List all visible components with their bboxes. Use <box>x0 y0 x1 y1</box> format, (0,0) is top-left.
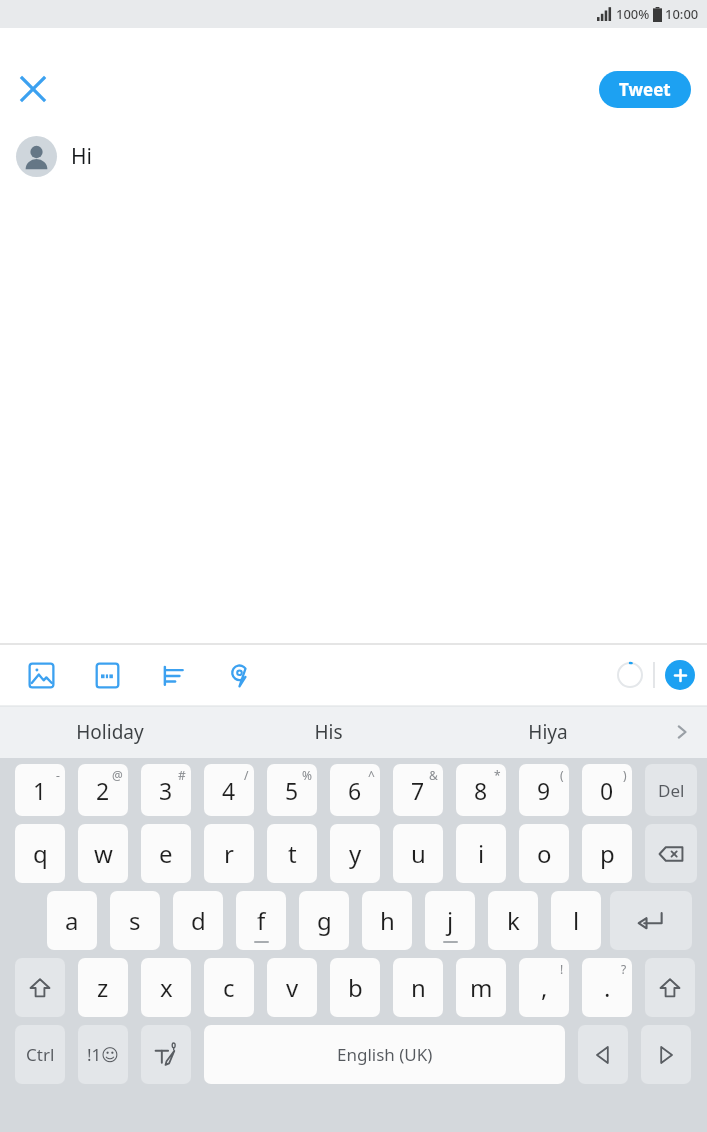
staticText: ) <box>623 767 627 783</box>
button[interactable]: i <box>456 824 506 883</box>
staticText: k <box>507 904 520 937</box>
button[interactable]: More suggestions <box>657 706 707 758</box>
staticText: r <box>224 837 234 870</box>
button[interactable]: b <box>330 958 380 1017</box>
button[interactable]: Holiday <box>0 706 219 758</box>
staticText: m <box>470 971 493 1004</box>
button[interactable]: e <box>141 824 191 883</box>
button[interactable]: Symbols and emoji <box>78 1025 128 1084</box>
button[interactable]: 1 <box>15 764 65 816</box>
staticText: v <box>286 971 299 1004</box>
staticText: t <box>288 837 297 870</box>
button[interactable]: 5 <box>267 764 317 816</box>
staticText: 7 <box>411 775 425 806</box>
button[interactable]: Move right <box>641 1025 691 1084</box>
button[interactable]: Add poll <box>140 651 206 699</box>
staticText: Hi <box>71 142 92 171</box>
button[interactable]: Add photo <box>8 651 74 699</box>
button[interactable]: Close <box>8 64 58 114</box>
button[interactable]: q <box>15 824 65 883</box>
staticText: 2 <box>96 775 110 806</box>
button[interactable]: a <box>47 891 97 950</box>
button[interactable]: 3 <box>141 764 191 816</box>
button[interactable]: His <box>219 706 438 758</box>
staticText: !1☺ <box>87 1043 120 1066</box>
button[interactable]: Backspace <box>645 824 697 883</box>
staticText: z <box>97 971 109 1004</box>
staticText: 6 <box>348 775 362 806</box>
staticText: f <box>257 904 266 937</box>
button[interactable]: l <box>551 891 601 950</box>
staticText: 3 <box>159 775 173 806</box>
button[interactable]: . <box>582 958 632 1017</box>
staticText: ( <box>560 767 564 783</box>
staticText: 8 <box>474 775 488 806</box>
button[interactable]: k <box>488 891 538 950</box>
button[interactable]: 0 <box>582 764 632 816</box>
button[interactable]: Shift <box>645 958 695 1017</box>
staticText: 1 <box>33 775 47 806</box>
staticText: Tweet <box>619 78 671 101</box>
staticText: Hiya <box>528 719 568 745</box>
button[interactable]: v <box>267 958 317 1017</box>
button[interactable]: Hiya <box>438 706 657 758</box>
button[interactable]: 4 <box>204 764 254 816</box>
button[interactable]: u <box>393 824 443 883</box>
button[interactable]: w <box>78 824 128 883</box>
button[interactable]: Tweet <box>599 71 691 108</box>
button[interactable]: Add tweet <box>665 660 695 690</box>
button[interactable]: Delete <box>645 764 697 816</box>
button[interactable]: Add location <box>206 651 272 699</box>
staticText: . <box>604 971 611 1004</box>
button[interactable]: g <box>299 891 349 950</box>
button[interactable]: Shift <box>15 958 65 1017</box>
button[interactable]: 6 <box>330 764 380 816</box>
staticText: * <box>494 767 501 783</box>
staticText: j <box>447 904 454 937</box>
button[interactable]: 2 <box>78 764 128 816</box>
staticText: i <box>478 837 485 870</box>
button[interactable]: 7 <box>393 764 443 816</box>
button[interactable]: f <box>236 891 286 950</box>
button[interactable]: d <box>173 891 223 950</box>
button[interactable]: 9 <box>519 764 569 816</box>
button[interactable]: t <box>267 824 317 883</box>
staticText: n <box>411 971 426 1004</box>
staticText: l <box>573 904 580 937</box>
button[interactable]: , <box>519 958 569 1017</box>
staticText: @ <box>112 767 123 783</box>
button[interactable]: n <box>393 958 443 1017</box>
button[interactable]: x <box>141 958 191 1017</box>
button[interactable]: m <box>456 958 506 1017</box>
button[interactable]: r <box>204 824 254 883</box>
button[interactable]: y <box>330 824 380 883</box>
staticText: h <box>380 904 395 937</box>
button[interactable]: h <box>362 891 412 950</box>
button[interactable]: Ctrl <box>15 1025 65 1084</box>
staticText: s <box>129 904 141 937</box>
button[interactable]: Handwriting and voice <box>141 1025 191 1084</box>
button[interactable]: s <box>110 891 160 950</box>
staticText: ^ <box>368 767 375 783</box>
button[interactable]: Space <box>204 1025 565 1084</box>
staticText: u <box>411 837 426 870</box>
button[interactable]: z <box>78 958 128 1017</box>
button[interactable]: p <box>582 824 632 883</box>
staticText: ? <box>621 961 627 977</box>
staticText: Ctrl <box>26 1043 55 1066</box>
staticText: e <box>159 837 173 870</box>
button[interactable]: o <box>519 824 569 883</box>
staticText: x <box>160 971 173 1004</box>
button[interactable]: Character count <box>610 655 650 695</box>
staticText: b <box>348 971 363 1004</box>
button[interactable]: c <box>204 958 254 1017</box>
button[interactable]: Move left <box>578 1025 628 1084</box>
staticText: p <box>600 837 615 870</box>
staticText: a <box>65 904 79 937</box>
button[interactable]: 8 <box>456 764 506 816</box>
staticText: c <box>223 971 235 1004</box>
staticText: g <box>317 904 332 937</box>
button[interactable]: j <box>425 891 475 950</box>
button[interactable]: Enter <box>610 891 692 950</box>
button[interactable]: Add GIF <box>74 651 140 699</box>
